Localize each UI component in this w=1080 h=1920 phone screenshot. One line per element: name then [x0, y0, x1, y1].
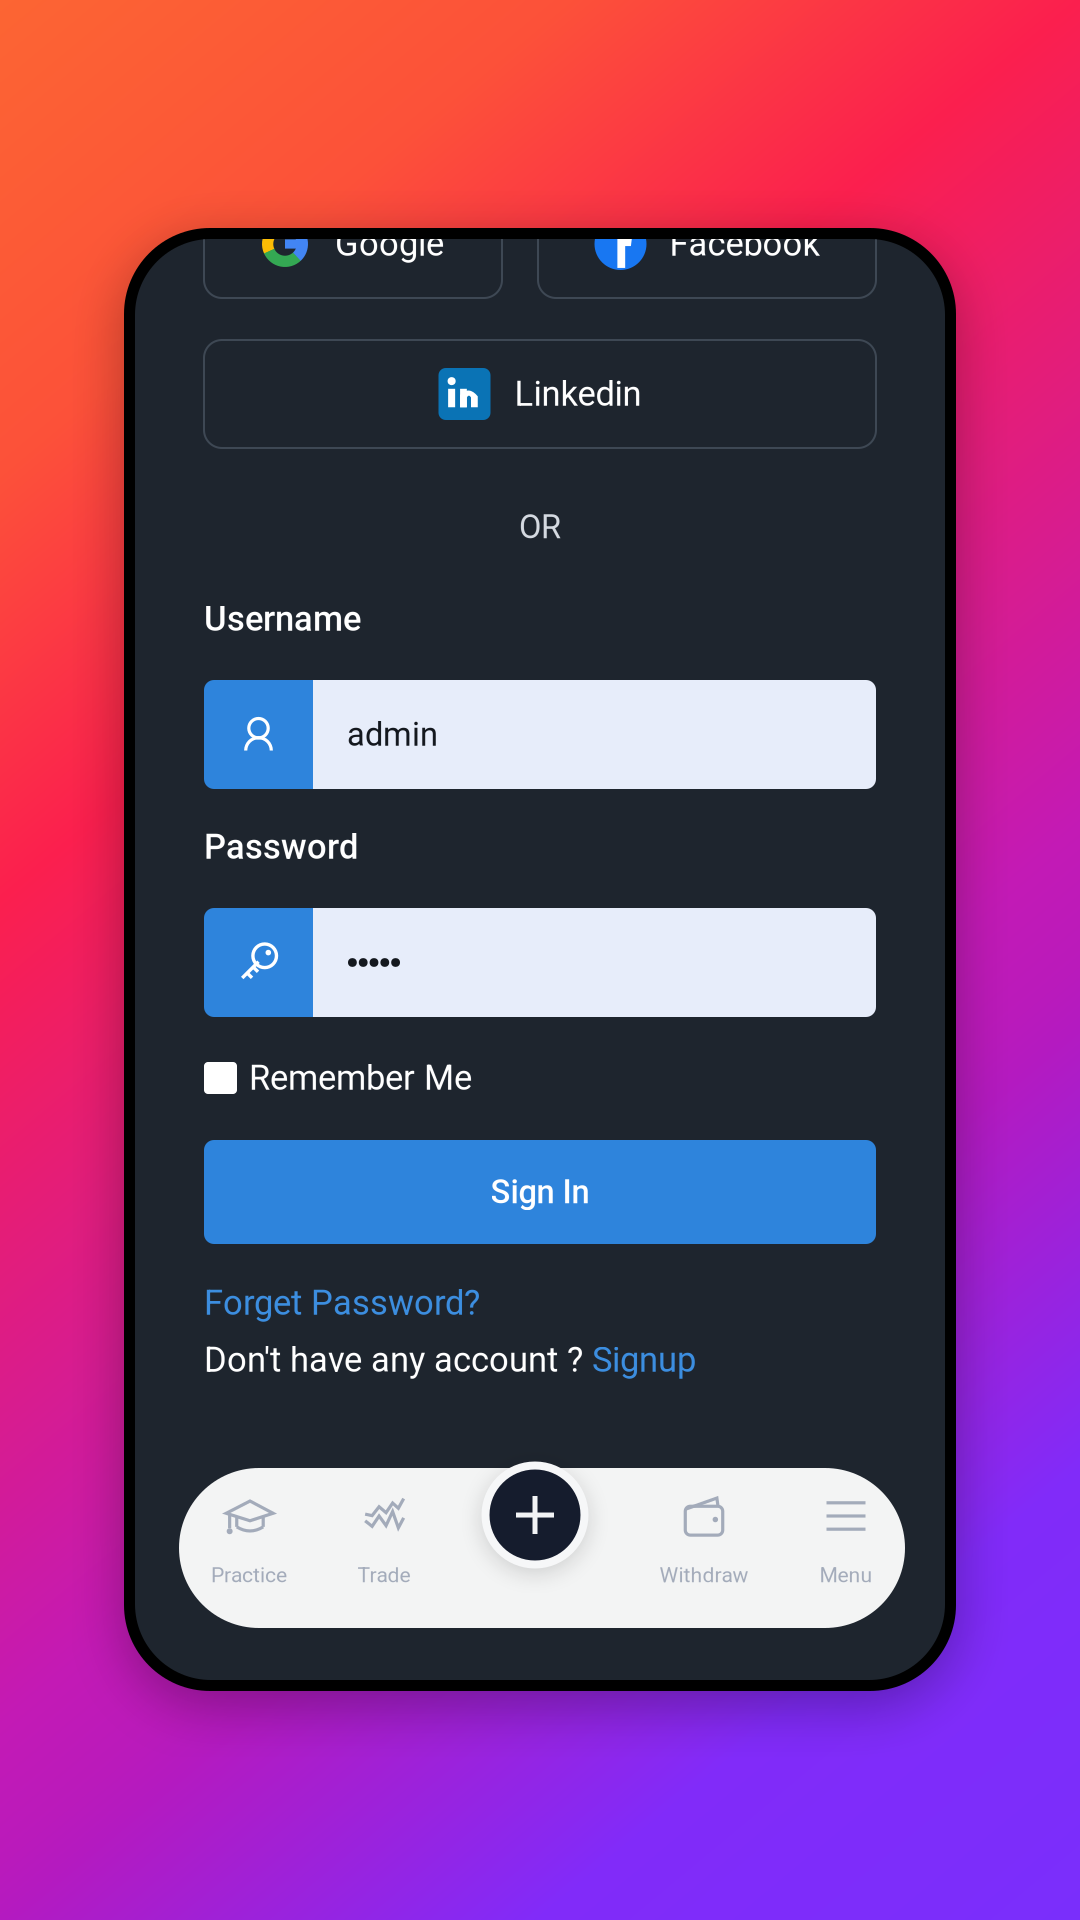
- button[interactable]: Google: [204, 190, 502, 298]
- staticText: OR: [519, 508, 561, 546]
- staticText: Linkedin: [514, 374, 641, 414]
- staticText: Signup: [592, 1340, 696, 1380]
- button[interactable]: Forget Password?: [204, 1280, 876, 1326]
- staticText: admin: [347, 715, 438, 754]
- staticText: Google: [335, 224, 444, 264]
- button[interactable]: Sign In: [204, 1140, 876, 1244]
- staticText: Password: [204, 827, 358, 867]
- button[interactable]: Facebook: [538, 190, 876, 298]
- staticText: Practice: [211, 1563, 287, 1587]
- staticText: Forget Password?: [204, 1283, 480, 1323]
- staticText: Don't have any account ?: [204, 1340, 592, 1380]
- button[interactable]: Trade: [309, 1468, 459, 1628]
- button[interactable]: Menu: [771, 1468, 921, 1628]
- staticText: Facebook: [669, 224, 819, 264]
- staticText: Username: [204, 599, 361, 639]
- button[interactable]: Remember Me: [204, 1056, 876, 1100]
- button[interactable]: Add: [481, 1461, 589, 1569]
- staticText: Trade: [357, 1563, 410, 1587]
- button[interactable]: Signup: [592, 1340, 696, 1380]
- button[interactable]: Withdraw: [629, 1468, 779, 1628]
- staticText: Sign In: [490, 1173, 589, 1211]
- staticText: Remember Me: [249, 1058, 472, 1098]
- staticText: Menu: [819, 1563, 872, 1587]
- staticText: Withdraw: [659, 1563, 748, 1587]
- button[interactable]: Practice: [174, 1468, 324, 1628]
- button[interactable]: Linkedin: [204, 340, 876, 448]
